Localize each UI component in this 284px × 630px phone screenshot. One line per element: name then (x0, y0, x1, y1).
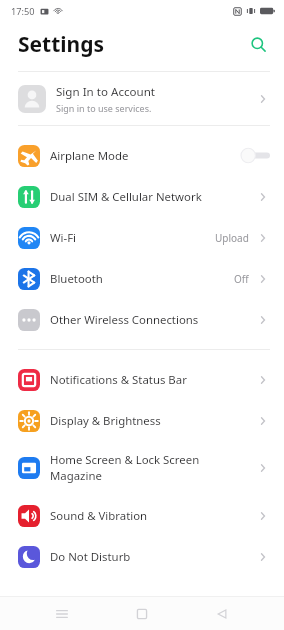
button[interactable]: Dual SIM & Cellular Network (0, 176, 284, 217)
staticText: Other Wireless Connections (50, 312, 256, 328)
button[interactable]: Bluetooth (0, 258, 284, 299)
button[interactable]: Airplane Mode (0, 135, 284, 176)
button[interactable]: Home Screen & Lock Screen (0, 441, 284, 495)
staticText: Sound & Vibration (50, 508, 256, 524)
button[interactable]: Search (245, 31, 271, 57)
button[interactable]: Sound & Vibration (0, 495, 284, 536)
button[interactable]: Recent apps (44, 597, 80, 630)
staticText: Dual SIM & Cellular Network (50, 189, 256, 205)
staticText: Off (234, 272, 249, 286)
staticText: Home Screen & Lock Screen (50, 452, 200, 468)
staticText: Notifications & Status Bar (50, 372, 256, 388)
button[interactable]: Display & Brightness (0, 400, 284, 441)
button[interactable]: Notifications & Status Bar (0, 359, 284, 400)
staticText: Wi-Fi (50, 230, 215, 246)
staticText: Magazine (50, 468, 102, 484)
staticText: Sign in to use services. (56, 102, 152, 114)
button[interactable]: Do Not Disturb (0, 536, 284, 577)
staticText: Do Not Disturb (50, 549, 256, 565)
button[interactable]: Wi-Fi (0, 217, 284, 258)
staticText: Bluetooth (50, 271, 234, 287)
button[interactable]: Other Wireless Connections (0, 299, 284, 340)
staticText: Display & Brightness (50, 413, 256, 429)
staticText: Settings (18, 30, 105, 59)
staticText: 17:50 (11, 5, 35, 18)
button[interactable]: Back (204, 597, 240, 630)
staticText: Sign In to Account (56, 84, 156, 100)
staticText: Airplane Mode (50, 148, 240, 164)
button[interactable]: Sign In to Account (0, 72, 284, 125)
staticText: Upload (215, 231, 249, 245)
button[interactable]: Home (124, 597, 160, 630)
